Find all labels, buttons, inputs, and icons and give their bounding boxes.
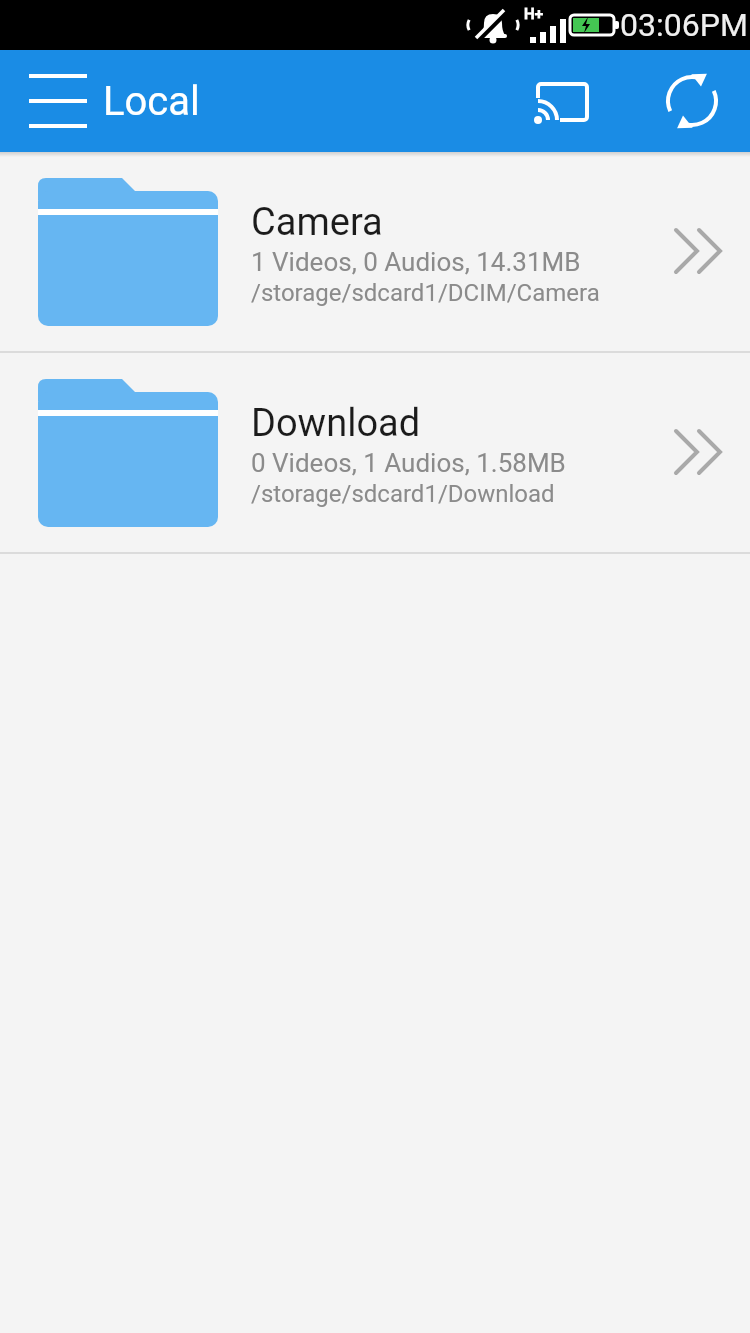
staticText: 03:06PM <box>620 6 748 44</box>
button[interactable] <box>20 63 96 139</box>
button[interactable] <box>664 50 720 152</box>
staticText: Camera <box>251 200 383 245</box>
button[interactable] <box>536 50 590 152</box>
staticText: 0 Videos, 1 Audios, 1.58MB <box>251 448 566 478</box>
staticText: Download <box>251 401 421 446</box>
staticText: H+ <box>524 5 544 23</box>
button[interactable]: Download <box>0 353 750 552</box>
staticText: /storage/sdcard1/Download <box>251 480 555 508</box>
staticText: 1 Videos, 0 Audios, 14.31MB <box>251 247 581 277</box>
staticText: /storage/sdcard1/DCIM/Camera <box>251 279 600 307</box>
button[interactable]: Camera <box>0 152 750 351</box>
staticText: Local <box>103 78 200 125</box>
